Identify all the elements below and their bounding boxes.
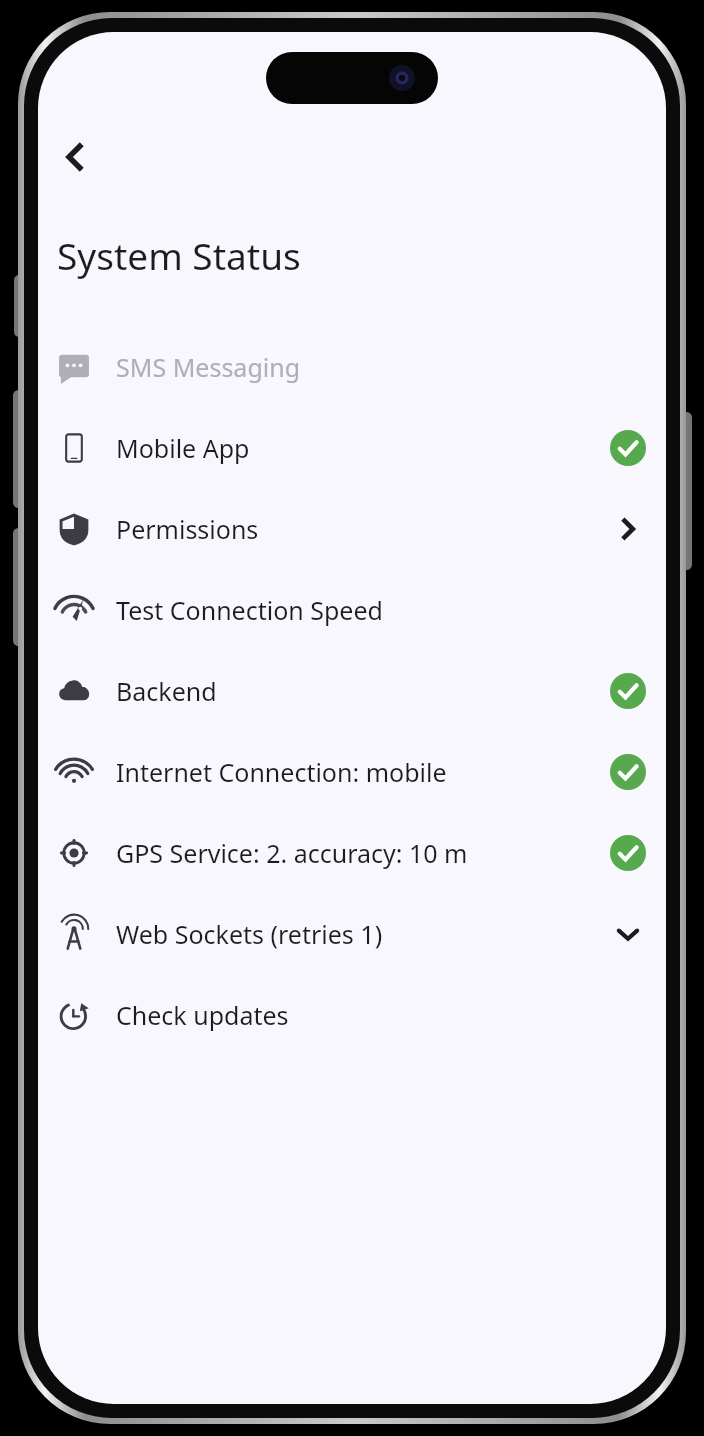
staticText: SMS Messaging [116, 350, 301, 384]
button[interactable]: Backend [38, 650, 666, 731]
staticText: Test Connection Speed [116, 593, 383, 627]
staticText: Permissions [116, 512, 259, 546]
staticText: Check updates [116, 998, 289, 1032]
other: Expand [610, 916, 646, 952]
staticText: Web Sockets (retries 1) [116, 917, 383, 951]
button[interactable]: Check updates [38, 974, 666, 1055]
other: Status OK [610, 754, 646, 790]
staticText: GPS Service: 2. accuracy: 10 m [116, 836, 468, 870]
staticText: System Status [57, 230, 301, 280]
staticText: Mobile App [116, 431, 250, 465]
other: Status OK [610, 430, 646, 466]
button[interactable]: Permissions [38, 488, 666, 569]
button[interactable]: Test Connection Speed [38, 569, 666, 650]
button[interactable]: Mobile App [38, 407, 666, 488]
button[interactable]: Back [44, 126, 106, 188]
other: Status OK [610, 673, 646, 709]
button[interactable]: GPS Service: 2. accuracy: 10 m [38, 812, 666, 893]
other: Status OK [610, 835, 646, 871]
staticText: Backend [116, 674, 217, 708]
button[interactable]: SMS Messaging [38, 326, 666, 407]
other: Open [610, 511, 646, 547]
button[interactable]: Internet Connection: mobile [38, 731, 666, 812]
button[interactable]: Web Sockets (retries 1) [38, 893, 666, 974]
staticText: Internet Connection: mobile [116, 755, 447, 789]
